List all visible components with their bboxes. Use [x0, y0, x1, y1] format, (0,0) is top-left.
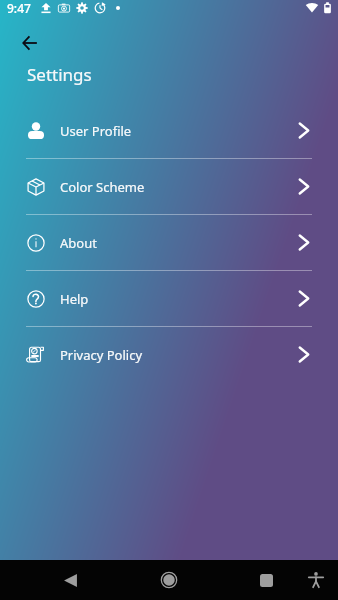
- button[interactable]: About: [0, 215, 338, 270]
- staticText: Settings: [27, 63, 92, 86]
- button[interactable]: Recents: [251, 565, 281, 595]
- staticText: 9:47: [7, 0, 31, 16]
- button[interactable]: Color Scheme: [0, 159, 338, 214]
- staticText: Privacy Policy: [60, 346, 143, 364]
- button[interactable]: Home: [154, 565, 184, 595]
- button[interactable]: Privacy Policy: [0, 327, 338, 382]
- button[interactable]: Back: [14, 27, 46, 59]
- button[interactable]: Help: [0, 271, 338, 326]
- staticText: User Profile: [60, 122, 132, 140]
- staticText: About: [60, 234, 97, 252]
- button[interactable]: Accessibility: [301, 565, 331, 595]
- button[interactable]: Back: [55, 565, 85, 595]
- staticText: Help: [60, 290, 89, 308]
- staticText: Color Scheme: [60, 178, 145, 196]
- button[interactable]: User Profile: [0, 103, 338, 158]
